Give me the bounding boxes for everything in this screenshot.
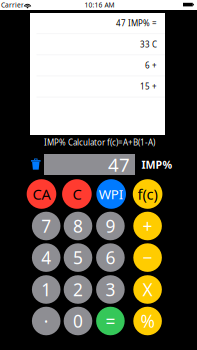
staticText: 9 [105, 214, 115, 237]
staticText: f(c) [138, 184, 158, 204]
staticText: 5 [73, 246, 83, 269]
button[interactable]: 6 + [30, 55, 165, 76]
staticText: 6 [105, 246, 115, 269]
staticText: = [105, 309, 115, 332]
button[interactable]: 1 [32, 275, 60, 304]
staticText: − [143, 246, 153, 269]
button[interactable]: 5 [64, 243, 92, 272]
staticText: % [141, 309, 155, 332]
staticText: IMP% [141, 157, 172, 172]
button[interactable]: 33 C [30, 34, 165, 54]
button[interactable]: 7 [32, 212, 60, 240]
staticText: · [44, 309, 49, 332]
button[interactable]: CA [27, 179, 56, 209]
staticText: 10:16 AM [84, 0, 114, 9]
staticText: 47 IMP% = [116, 18, 157, 28]
staticText: 33 C [140, 39, 157, 50]
staticText: 4 [41, 246, 51, 269]
button[interactable]: − [133, 243, 162, 272]
button[interactable]: 0 [64, 307, 92, 335]
staticText: 2 [73, 278, 83, 301]
staticText: 8 [73, 214, 83, 237]
button[interactable]: + [133, 212, 162, 240]
staticText: 6 + [145, 60, 157, 71]
staticText: + [143, 214, 153, 237]
button[interactable]: % [133, 307, 162, 335]
button[interactable]: f(c) [133, 179, 162, 209]
button[interactable]: 3 [96, 275, 125, 304]
staticText: C [72, 184, 81, 204]
button[interactable]: 8 [64, 212, 92, 240]
staticText: 0 [73, 309, 83, 332]
button[interactable]: 4 [32, 243, 60, 272]
staticText: 1 [41, 278, 51, 301]
staticText: Carrier [1, 0, 24, 9]
button[interactable]: 6 [96, 243, 125, 272]
button[interactable]: 47 IMP% = [30, 13, 165, 33]
button[interactable]: Clear [28, 153, 44, 174]
button[interactable]: 15 + [30, 76, 165, 97]
staticText: WPI [99, 185, 124, 203]
staticText: IMP% Calculator f(c)=A+B(1-A) [44, 137, 155, 148]
staticText: 47 [108, 152, 130, 177]
staticText: CA [32, 184, 50, 204]
staticText: 7 [41, 214, 51, 237]
button[interactable]: 2 [64, 275, 92, 304]
button[interactable]: WPI [96, 179, 126, 209]
button[interactable]: 9 [96, 212, 125, 240]
button[interactable]: · [32, 307, 60, 335]
button[interactable]: X [133, 275, 162, 304]
button[interactable]: = [96, 307, 125, 335]
staticText: 15 + [140, 81, 157, 92]
staticText: 3 [105, 278, 115, 301]
button[interactable]: C [62, 179, 92, 209]
staticText: X [143, 278, 153, 301]
